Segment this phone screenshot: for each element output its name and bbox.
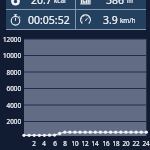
staticText: km/h [120,16,136,25]
staticText: 18 [109,139,123,148]
staticText: 3.9 [103,13,118,27]
staticText: 12000 [0,35,21,44]
staticText: 6000 [0,84,21,93]
staticText: 8 [58,139,72,148]
staticText: 10000 [0,51,21,60]
staticText: 00:05:52 [28,13,70,27]
staticText: 2000 [0,117,21,126]
staticText: 12 [78,139,92,148]
staticText: 16 [99,139,113,148]
staticText: 20 [119,139,133,148]
staticText: 22 [129,139,143,148]
staticText: 4000 [0,101,21,110]
staticText: 8000 [0,68,21,77]
staticText: 14 [88,139,102,148]
button[interactable]: Speed [76,10,146,29]
button[interactable]: Distance [76,0,146,9]
staticText: 4 [37,139,51,148]
staticText: 24 [139,139,150,148]
staticText: 586 [106,0,125,7]
button[interactable]: Duration [6,10,75,29]
staticText: 6 [48,139,62,148]
staticText: 2 [27,139,41,148]
staticText: 20.7 [31,0,52,7]
button[interactable]: Calories [6,0,75,9]
staticText: 10 [68,139,82,148]
staticText: kcal [54,0,66,5]
staticText: m [127,0,133,5]
